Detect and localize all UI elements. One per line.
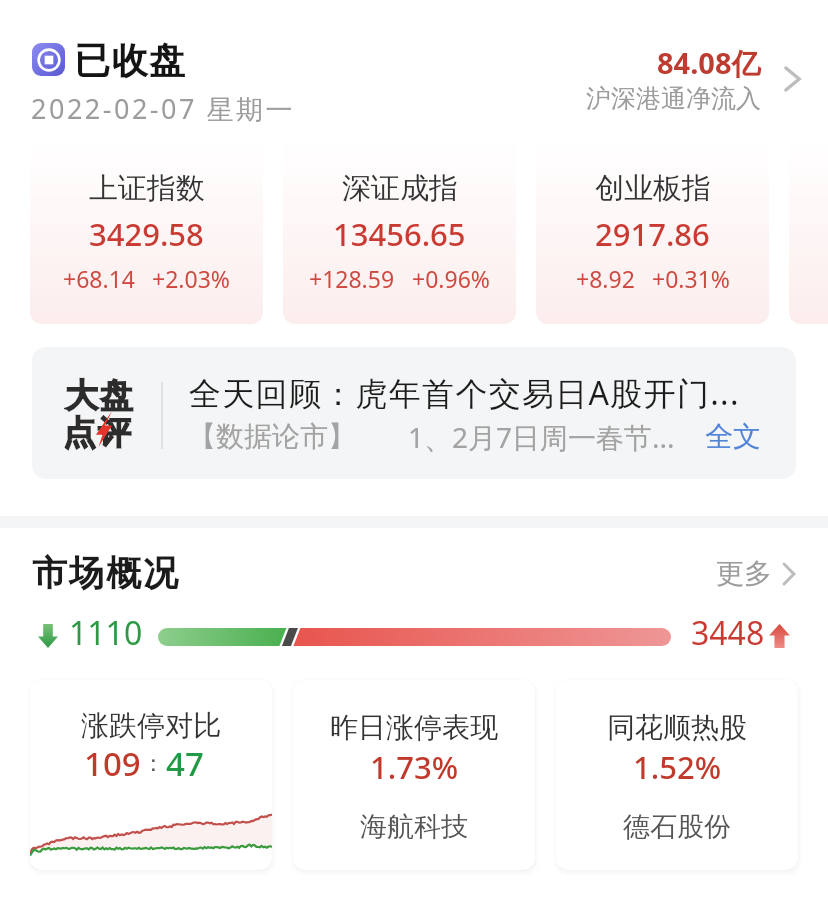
button[interactable]: 创业板指 (536, 139, 769, 324)
staticText: 109 (84, 741, 141, 786)
staticText: +8.92 (576, 263, 635, 294)
staticText: 1.73% (370, 746, 459, 788)
staticText: 沪深港通净流入 (586, 83, 761, 114)
staticText: 2022-02-07 星期一 (31, 90, 295, 127)
staticText: 全文 (705, 419, 761, 454)
staticText: 大盘 (64, 375, 134, 417)
staticText: 市场概况 (31, 551, 179, 595)
staticText: 上证指数 (89, 170, 205, 207)
staticText: 点评 (62, 412, 132, 454)
staticText: 德石股份 (623, 810, 731, 844)
staticText: 13456.65 (333, 213, 466, 255)
button[interactable]: 沪深300 (789, 139, 828, 324)
staticText: 【数据论市】 (188, 419, 356, 454)
staticText: 1110 (69, 611, 143, 655)
button[interactable]: Market closed (32, 43, 65, 76)
staticText: 47 (166, 741, 204, 786)
button[interactable]: 大盘 (32, 347, 796, 479)
staticText: +128.59 (309, 263, 395, 294)
button[interactable]: 深证成指 (283, 139, 516, 324)
button[interactable]: 昨日涨停表现 (293, 680, 535, 870)
staticText: 更多 (716, 556, 772, 591)
staticText: ： (142, 749, 165, 778)
staticText: 1、2月7日周一春节... (408, 418, 675, 456)
staticText: +2.03% (152, 263, 230, 294)
staticText: 1.52% (633, 746, 722, 788)
staticText: 同花顺热股 (607, 710, 747, 745)
staticText: 昨日涨停表现 (330, 710, 498, 745)
staticText: 已收盘 (74, 38, 187, 83)
staticText: 84.08亿 (657, 43, 761, 83)
staticText: +68.14 (63, 263, 135, 294)
staticText: 3429.58 (89, 213, 204, 255)
staticText: 涨跌停对比 (81, 708, 221, 743)
other: More northbound flows (783, 68, 802, 90)
button[interactable]: 同花顺热股 (556, 680, 798, 870)
button[interactable]: 84.08亿 (560, 43, 810, 114)
staticText: +0.96% (412, 263, 490, 294)
staticText: 海航科技 (360, 810, 468, 844)
staticText: 深证成指 (342, 170, 458, 207)
staticText: 全天回顾：虎年首个交易日A股开门... (189, 371, 740, 415)
staticText: 3448 (691, 611, 765, 655)
button[interactable]: 上证指数 (30, 139, 263, 324)
button[interactable]: 更多 (716, 552, 816, 595)
staticText: +0.31% (652, 263, 730, 294)
button[interactable]: 涨跌停对比 (30, 680, 272, 870)
staticText: 创业板指 (595, 170, 711, 207)
staticText: 2917.86 (595, 213, 710, 255)
button[interactable]: 全文 (699, 413, 767, 460)
